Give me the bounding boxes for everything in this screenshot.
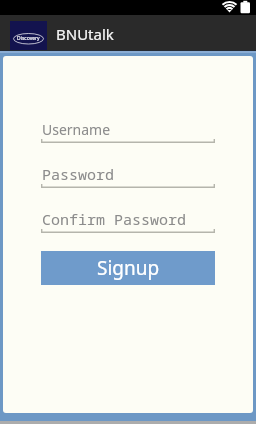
staticText: BNUtalk [56,24,114,44]
button[interactable]: Discovery [10,21,47,50]
staticText: Signup [97,255,160,281]
button[interactable]: Password [41,162,215,188]
staticText: Password [42,164,115,184]
button[interactable]: Username [41,118,215,143]
staticText: Username [42,120,111,139]
button[interactable]: Signup [41,251,215,285]
staticText: Discovery [17,35,40,42]
button[interactable]: Confirm Password [41,207,215,233]
staticText: Confirm Password [42,209,187,229]
